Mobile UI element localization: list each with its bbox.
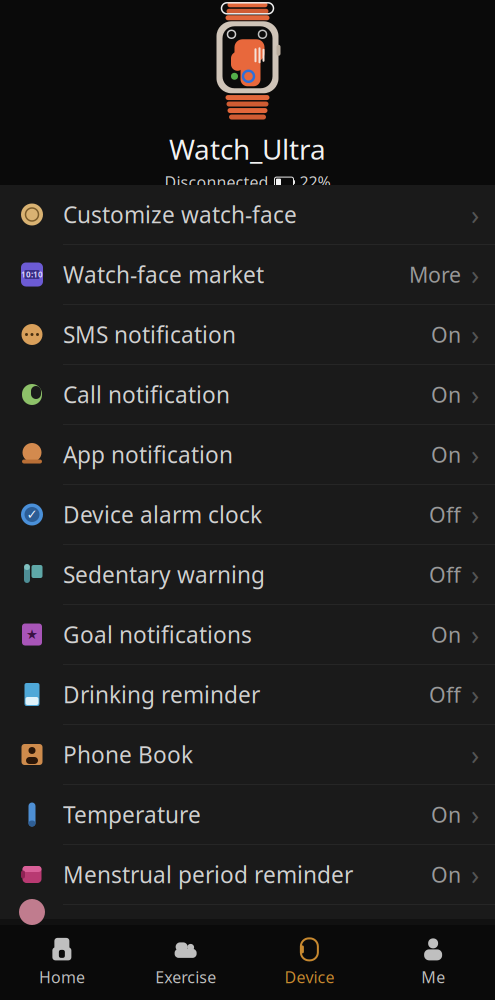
button[interactable]: Menstrual period reminder	[0, 845, 495, 905]
button[interactable]: Sedentary warning	[0, 545, 495, 605]
staticText: Goal notifications	[63, 619, 252, 649]
button[interactable]: SMS notification	[0, 305, 495, 365]
staticText: SMS notification	[63, 319, 236, 349]
staticText: Menstrual period reminder	[63, 859, 353, 889]
staticText: Temperature	[63, 799, 201, 829]
staticText: Home	[39, 966, 85, 988]
staticText: Device alarm clock	[63, 499, 262, 529]
staticText: ›	[471, 737, 479, 772]
staticText: Customize watch-face	[63, 199, 297, 229]
staticText: 10:10	[21, 269, 43, 280]
staticText: ›	[471, 557, 479, 592]
staticText: ★	[26, 627, 38, 642]
staticText: ›	[471, 617, 479, 652]
staticText: More	[409, 260, 461, 289]
staticText: Call notification	[63, 379, 230, 409]
staticText: Drinking reminder	[63, 679, 260, 709]
staticText: Disconnected	[164, 171, 268, 193]
staticText: ›	[471, 797, 479, 832]
staticText: On	[431, 860, 461, 889]
staticText: ›	[471, 317, 479, 352]
button[interactable]: Exercise	[124, 929, 248, 996]
staticText: Off	[429, 680, 461, 709]
button[interactable]: Customize watch-face	[0, 185, 495, 245]
staticText: On	[431, 800, 461, 829]
staticText: 22%	[299, 171, 330, 193]
button[interactable]: Home	[0, 929, 124, 996]
staticText: On	[431, 320, 461, 349]
staticText: Device	[284, 966, 334, 988]
button[interactable]: ✓	[0, 485, 495, 545]
button[interactable]: ★	[0, 605, 495, 665]
staticText: ›	[471, 497, 479, 532]
staticText: ✓	[26, 507, 37, 522]
staticText: ›	[471, 437, 479, 472]
staticText: On	[431, 620, 461, 649]
button[interactable]: Me	[371, 929, 495, 996]
button[interactable]: Drinking reminder	[0, 665, 495, 725]
staticText: Watch-face market	[63, 259, 264, 289]
staticText: ›	[471, 197, 479, 232]
button[interactable]: Temperature	[0, 785, 495, 845]
button[interactable]: Phone Book	[0, 725, 495, 785]
button[interactable]: Call notification	[0, 365, 495, 425]
staticText: ›	[471, 857, 479, 892]
staticText: Off	[429, 500, 461, 529]
button[interactable]: App notification	[0, 425, 495, 485]
staticText: Sedentary warning	[63, 559, 265, 589]
staticText: ›	[471, 677, 479, 712]
button[interactable]: 10:10	[0, 245, 495, 305]
staticText: ›	[471, 257, 479, 292]
staticText: Me	[421, 966, 445, 988]
staticText: Off	[429, 560, 461, 589]
staticText: On	[431, 440, 461, 469]
button[interactable]: Device	[247, 929, 371, 996]
staticText: Watch_Ultra	[169, 130, 326, 167]
staticText: App notification	[63, 439, 233, 469]
staticText: ›	[471, 377, 479, 412]
staticText: Exercise	[155, 966, 216, 988]
staticText: On	[431, 380, 461, 409]
staticText: Phone Book	[63, 739, 193, 769]
